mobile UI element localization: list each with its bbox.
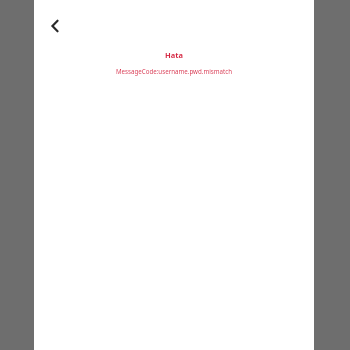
staticText: MessageCode:username.pwd.mismatch [44, 67, 304, 75]
staticText: Bildirim tercihleri [24, 328, 89, 339]
staticText: İşlem geçmişi görüntüleme [24, 284, 127, 295]
staticText: Hata [44, 50, 304, 60]
staticText: Hesap doğrulama adımı [24, 262, 115, 273]
staticText: Kullanıcı adı ve şifre kontrolü [24, 240, 133, 251]
staticText: Güvenlik ayarları [24, 306, 88, 317]
staticText: Sipariş Onayı [8, 3, 78, 18]
button[interactable]: Uyarı [4, 84, 346, 136]
button[interactable]: Tümünü Göster [261, 209, 345, 224]
button[interactable]: Şifre [18, 155, 332, 195]
button[interactable]: Detaylı Bilgi [8, 55, 70, 69]
button[interactable]: Back [41, 12, 69, 40]
staticText: Gönder [289, 169, 322, 181]
button[interactable]: Satın Al [5, 209, 46, 224]
staticText: Şifre [28, 169, 47, 181]
